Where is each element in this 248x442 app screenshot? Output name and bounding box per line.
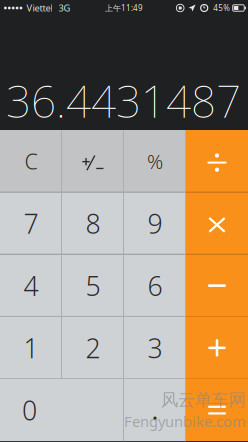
button[interactable]: Decimal point	[124, 379, 186, 441]
button[interactable]: Multiply	[186, 192, 248, 254]
staticText: 8	[85, 206, 100, 241]
staticText: 1	[23, 330, 38, 366]
staticText: 3G	[58, 2, 70, 14]
button[interactable]: 8	[62, 192, 124, 254]
button[interactable]: Add	[186, 317, 248, 379]
staticText: 7	[23, 206, 38, 241]
button[interactable]: 5	[62, 254, 124, 317]
button[interactable]: 0	[0, 379, 124, 441]
staticText: 36.4431487	[6, 72, 241, 130]
staticText: %	[147, 148, 163, 174]
staticText: 2	[85, 330, 100, 366]
staticText: 4	[23, 268, 38, 303]
button[interactable]: Equals	[186, 379, 248, 441]
staticText: 3	[147, 330, 162, 366]
button[interactable]: 6	[124, 254, 186, 317]
button[interactable]: 4	[0, 254, 62, 317]
staticText: 风云单车网	[161, 389, 246, 410]
button[interactable]: Toggle sign	[62, 130, 124, 192]
staticText: 上午11:49	[105, 3, 143, 13]
button[interactable]: %	[124, 130, 186, 192]
staticText: C	[24, 147, 37, 175]
button[interactable]: 2	[62, 317, 124, 379]
button[interactable]: Subtract	[186, 254, 248, 317]
button[interactable]: Divide	[186, 130, 248, 192]
staticText: 0	[22, 392, 37, 428]
button[interactable]: 3	[124, 317, 186, 379]
staticText: 9	[147, 206, 162, 241]
staticText: 6	[147, 268, 162, 303]
staticText: 45%	[213, 3, 230, 13]
staticText: 5	[85, 268, 100, 303]
button[interactable]: 7	[0, 192, 62, 254]
staticText: Fengyunbike.com	[124, 411, 246, 431]
button[interactable]: 9	[124, 192, 186, 254]
button[interactable]: 1	[0, 317, 62, 379]
staticText: Viettel	[26, 2, 52, 14]
button[interactable]: C	[0, 130, 62, 192]
